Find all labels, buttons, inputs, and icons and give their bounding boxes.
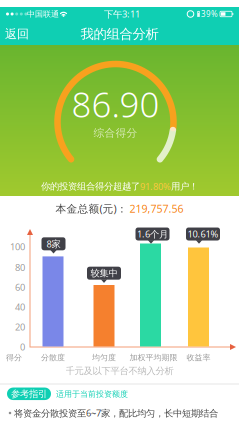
staticText: 20 [15,321,25,333]
staticText: 你的投资组合得分超越了 [41,181,140,192]
staticText: 0 [20,341,25,353]
staticText: 100 [10,240,25,253]
staticText: 39% [201,9,218,19]
staticText: 均匀度 [92,353,116,362]
staticText: 中国联通 [27,9,59,19]
staticText: 得分 [6,353,22,362]
staticText: 综合得分 [93,126,137,139]
staticText: 1.6个月 [137,228,168,240]
staticText: 本金总额(元)： [55,201,127,216]
staticText: 60 [15,281,25,293]
staticText: 适用于当前投资额度 [56,389,128,399]
staticText: 10.61% [187,228,218,240]
staticText: 用户！ [171,181,198,192]
staticText: 参考指引 [11,388,47,400]
staticText: 分散度 [41,353,65,362]
staticText: 下午3:11 [104,8,140,20]
staticText: 收益率 [186,353,210,362]
staticText: 91.80% [140,180,171,193]
staticText: 较集中 [90,267,117,279]
staticText: 千元及以下平台不纳入分析 [65,365,173,377]
staticText: 40 [15,301,25,313]
staticText: 80 [15,261,25,274]
staticText: 返回 [5,27,29,41]
staticText: 将资金分散投资至6~7家，配比均匀，长中短期结合 [14,407,218,419]
staticText: 加权平均期限 [129,353,177,362]
staticText: 我的组合分析 [80,26,158,42]
staticText: 86.90 [71,81,159,127]
staticText: 8家 [46,238,60,250]
staticText: 219,757.56 [129,201,183,216]
